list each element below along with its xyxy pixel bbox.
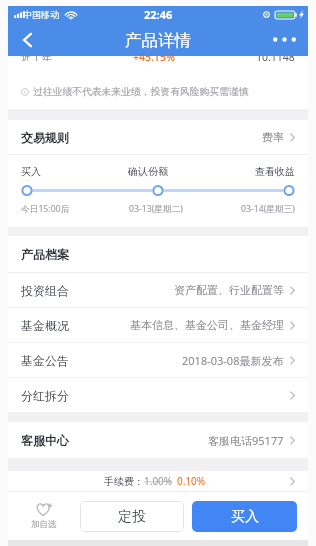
button[interactable]: More options xyxy=(260,23,308,56)
staticText: 基本信息、基金公司、基金经理 xyxy=(130,318,284,332)
staticText: 22:46 xyxy=(144,7,173,22)
staticText: 产品详情 xyxy=(125,30,191,51)
button[interactable]: Back xyxy=(8,23,46,56)
staticText: 手续费： xyxy=(104,475,144,488)
button[interactable]: 投资组合 xyxy=(8,273,308,307)
staticText: 客服中心 xyxy=(21,433,69,448)
staticText: 基金公告 xyxy=(21,353,69,368)
staticText: 0.10% xyxy=(177,474,206,488)
staticText: 中国移动 xyxy=(23,9,59,20)
button[interactable]: 定投 xyxy=(80,501,184,532)
staticText: 产品详情 xyxy=(125,30,191,51)
staticText: +45.15% xyxy=(133,56,175,61)
staticText: 产品档案 xyxy=(21,247,69,262)
staticText: 基金概况 xyxy=(21,318,69,333)
staticText: 交易规则 xyxy=(21,130,69,145)
staticText: 1.00% xyxy=(144,474,173,488)
button[interactable]: 基金公告 xyxy=(8,343,308,377)
button[interactable]: 基金概况 xyxy=(8,308,308,342)
button[interactable]: 手续费： xyxy=(8,471,308,491)
button[interactable]: 客服中心 xyxy=(8,422,308,458)
staticText: 22:46 xyxy=(144,7,173,22)
staticText: 加自选 xyxy=(31,519,57,530)
button[interactable]: 买入 xyxy=(192,501,297,532)
staticText: 资产配置、行业配置等 xyxy=(174,283,284,297)
staticText: 近 1 年 xyxy=(21,56,52,61)
button[interactable]: 加自选 xyxy=(8,492,80,540)
button[interactable]: 交易规则 xyxy=(8,120,308,154)
staticText: 03-14(星期三) xyxy=(241,203,295,215)
staticText: 分红拆分 xyxy=(21,388,69,403)
button[interactable]: 分红拆分 xyxy=(8,378,308,412)
button[interactable]: More options xyxy=(260,23,308,56)
staticText: 10.1148 xyxy=(256,56,295,61)
staticText: 查看收益 xyxy=(255,165,295,178)
staticText: 定投 xyxy=(118,508,146,526)
staticText: 买入 xyxy=(21,165,41,178)
staticText: 过往业绩不代表未来业绩，投资有风险购买需谨慎 xyxy=(33,86,249,98)
staticText: 费率 xyxy=(262,130,284,144)
staticText: 买入 xyxy=(231,508,259,526)
staticText: 客服电话95177 xyxy=(208,433,284,448)
staticText: 投资组合 xyxy=(21,283,69,298)
staticText: 今日15:00后 xyxy=(21,203,70,215)
staticText: 中国移动 xyxy=(23,9,59,20)
button[interactable]: Back xyxy=(8,23,46,56)
staticText: 确认份额 xyxy=(128,165,168,178)
staticText: 2018-03-08最新发布 xyxy=(182,353,284,368)
staticText: 03-13(星期二) xyxy=(129,203,183,215)
